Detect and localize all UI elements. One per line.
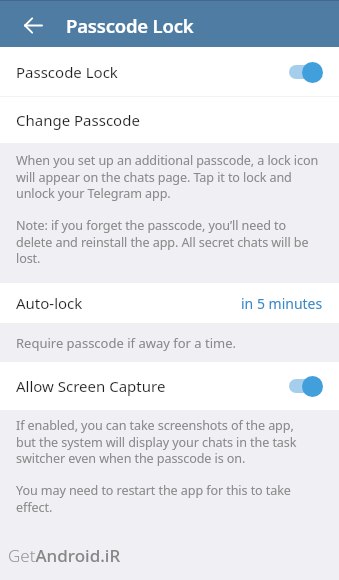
staticText: Change Passcode bbox=[16, 110, 140, 130]
button[interactable]: Change Passcode bbox=[0, 97, 339, 143]
staticText: When you set up an additional passcode, … bbox=[16, 152, 319, 201]
staticText: Note: if you forget the passcode, you’ll… bbox=[16, 217, 309, 266]
staticText: Passcode Lock bbox=[16, 62, 118, 82]
staticText: in 5 minutes bbox=[241, 294, 323, 313]
button[interactable] bbox=[19, 11, 47, 39]
staticText: Require passcode if away for a time. bbox=[16, 334, 236, 352]
button[interactable]: Auto-lock bbox=[0, 283, 339, 323]
staticText: Auto-lock bbox=[16, 293, 83, 313]
staticText: Allow Screen Capture bbox=[16, 376, 166, 396]
staticText: If enabled, you can take screenshots of … bbox=[16, 417, 297, 466]
staticText: You may need to restart the app for this… bbox=[16, 482, 291, 515]
button[interactable]: Passcode Lock bbox=[0, 47, 339, 96]
button[interactable]: Allow Screen Capture bbox=[0, 362, 339, 410]
staticText: Passcode Lock bbox=[66, 13, 194, 38]
staticText: GetAndroid.iR bbox=[8, 544, 121, 567]
